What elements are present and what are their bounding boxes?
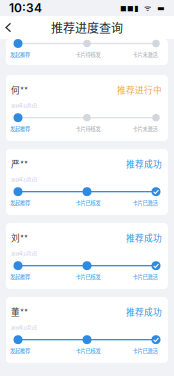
- staticText: 卡片待核发: [75, 51, 100, 58]
- staticText: 推荐成功: [126, 157, 162, 170]
- staticText: 刘**: [11, 231, 28, 244]
- staticText: 2019年11月1日: [11, 325, 37, 331]
- staticText: 发起推荐: [10, 125, 30, 132]
- staticText: 推荐进行中: [117, 83, 162, 96]
- staticText: 推荐成功: [126, 231, 162, 244]
- button[interactable]: 刘**: [6, 223, 168, 289]
- staticText: 2019年11月1日: [11, 251, 37, 257]
- staticText: 2019年11月1日: [11, 177, 37, 183]
- staticText: 何**: [11, 83, 28, 96]
- button[interactable]: 发起推荐: [6, 39, 168, 65]
- staticText: 推荐成功: [126, 305, 162, 318]
- staticText: 卡片已激活: [132, 273, 157, 280]
- button[interactable]: 董**: [6, 297, 168, 363]
- staticText: 卡片已激活: [132, 199, 157, 206]
- staticText: 发起推荐: [10, 51, 30, 58]
- staticText: 严**: [11, 157, 28, 170]
- button[interactable]: 何**: [6, 75, 168, 141]
- staticText: 发起推荐: [10, 199, 30, 206]
- button[interactable]: Back: [0, 18, 17, 36]
- staticText: 卡片未激活: [132, 51, 157, 58]
- staticText: 卡片已激活: [132, 347, 157, 354]
- staticText: 卡片已核发: [75, 347, 100, 354]
- staticText: 卡片已核发: [75, 199, 100, 206]
- staticText: 董**: [11, 305, 28, 318]
- button[interactable]: 严**: [6, 149, 168, 215]
- staticText: 发起推荐: [10, 273, 30, 280]
- staticText: 卡片未激活: [132, 125, 157, 132]
- staticText: 10:34: [9, 1, 42, 15]
- staticText: 推荐进度查询: [51, 19, 123, 36]
- staticText: 2019年11月1日: [11, 103, 37, 109]
- staticText: 卡片待核发: [75, 125, 100, 132]
- staticText: 卡片已核发: [75, 273, 100, 280]
- staticText: ◼◼▮ ᯤ ▬: [120, 3, 165, 13]
- staticText: 发起推荐: [10, 347, 30, 354]
